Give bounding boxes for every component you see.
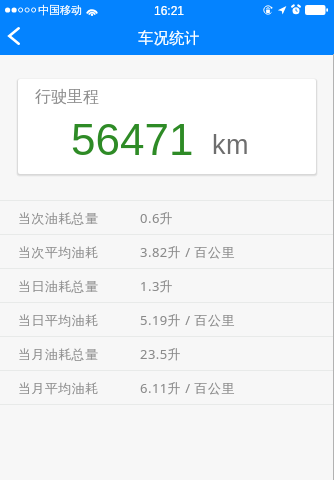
button[interactable]: 当次油耗总量 xyxy=(0,201,334,234)
staticText: 当次平均油耗 xyxy=(18,244,140,260)
button[interactable]: 当次平均油耗 xyxy=(0,235,334,268)
staticText: 车况统计 xyxy=(138,29,200,48)
staticText: 当月油耗总量 xyxy=(18,346,140,362)
staticText: 23.5升 xyxy=(140,345,182,363)
button[interactable]: 行驶里程 xyxy=(18,79,316,174)
staticText: 当次油耗总量 xyxy=(18,210,140,226)
staticText: 6.11升 / 百公里 xyxy=(140,379,235,397)
staticText: 当月平均油耗 xyxy=(18,380,140,396)
button[interactable]: Back xyxy=(0,21,34,55)
staticText: 16:21 xyxy=(154,4,185,17)
staticText: 当日油耗总量 xyxy=(18,278,140,294)
staticText: 当日平均油耗 xyxy=(18,312,140,328)
staticText: 1.3升 xyxy=(140,277,174,295)
button[interactable]: 当月油耗总量 xyxy=(0,337,334,370)
staticText: km xyxy=(212,130,250,160)
button[interactable]: 当日油耗总量 xyxy=(0,269,334,302)
staticText: 3.82升 / 百公里 xyxy=(140,243,235,261)
staticText: 56471 xyxy=(71,115,194,164)
staticText: 5.19升 / 百公里 xyxy=(140,311,235,329)
staticText: 0.6升 xyxy=(140,209,174,227)
button[interactable]: 当日平均油耗 xyxy=(0,303,334,336)
staticText: 中国移动 xyxy=(38,3,82,17)
staticText: 行驶里程 xyxy=(35,87,99,107)
button[interactable]: 当月平均油耗 xyxy=(0,371,334,404)
